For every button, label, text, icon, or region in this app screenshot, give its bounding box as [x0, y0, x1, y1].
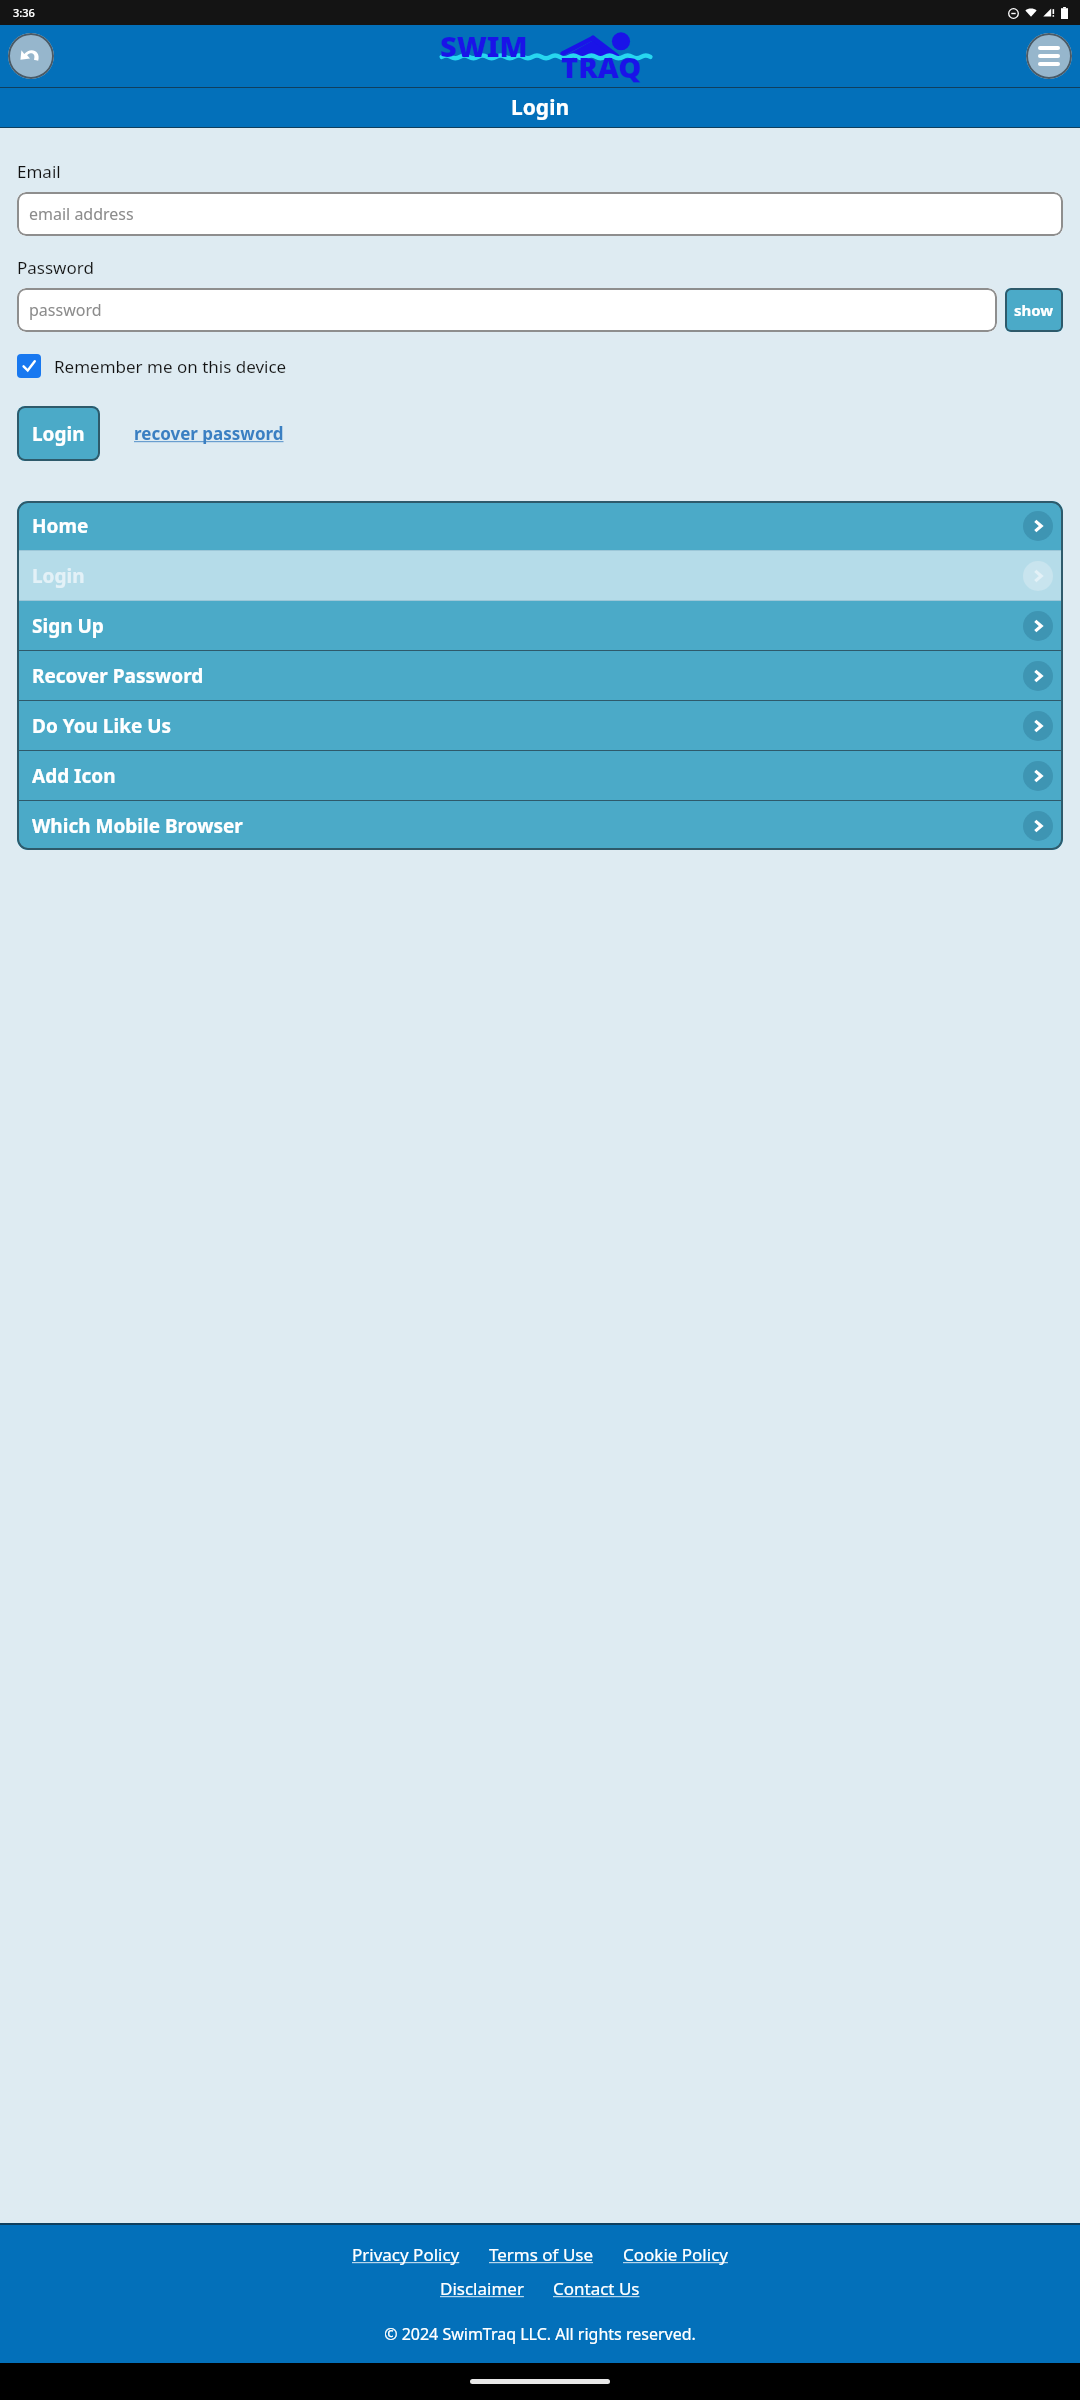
button[interactable]: Disclaimer: [440, 2277, 524, 2300]
staticText: Do You Like Us: [32, 713, 172, 739]
staticText: Login: [511, 93, 570, 122]
button[interactable]: Terms of Use: [489, 2243, 594, 2266]
staticText: Which Mobile Browser: [32, 813, 243, 839]
button[interactable]: Menu: [1026, 33, 1072, 79]
button[interactable]: Login: [17, 406, 100, 461]
button[interactable]: Cookie Policy: [623, 2243, 728, 2266]
button[interactable]: Which Mobile Browser: [17, 801, 1063, 850]
button[interactable]: show: [1005, 288, 1063, 332]
staticText: Recover Password: [32, 663, 204, 689]
button[interactable]: recover password: [130, 418, 288, 449]
staticText: Privacy Policy: [352, 2243, 460, 2266]
staticText: © 2024 SwimTraq LLC. All rights reserved…: [384, 2323, 696, 2345]
button[interactable]: Privacy Policy: [352, 2243, 460, 2266]
staticText: email address: [29, 203, 134, 225]
staticText: show: [1014, 300, 1054, 320]
staticText: password: [29, 299, 102, 321]
staticText: SWIM: [440, 26, 528, 65]
button[interactable]: Contact Us: [553, 2277, 640, 2300]
button[interactable]: password: [17, 288, 997, 332]
button[interactable]: Remember me on this device: [17, 354, 287, 378]
staticText: Home: [32, 513, 89, 539]
button[interactable]: Sign Up: [17, 601, 1063, 650]
button[interactable]: email address: [17, 192, 1063, 236]
staticText: Terms of Use: [489, 2243, 594, 2266]
button[interactable]: Back: [8, 33, 54, 79]
staticText: Login: [32, 563, 85, 589]
staticText: Cookie Policy: [623, 2243, 728, 2266]
staticText: recover password: [134, 422, 284, 445]
staticText: Sign Up: [32, 613, 104, 639]
staticText: TRAQ: [561, 47, 642, 86]
staticText: Email: [17, 160, 61, 183]
button[interactable]: Home: [17, 501, 1063, 550]
button[interactable]: Login: [17, 551, 1063, 600]
button[interactable]: Add Icon: [17, 751, 1063, 800]
staticText: Remember me on this device: [54, 355, 287, 378]
button[interactable]: Do You Like Us: [17, 701, 1063, 750]
staticText: Disclaimer: [440, 2277, 524, 2300]
staticText: Add Icon: [32, 763, 116, 789]
staticText: Contact Us: [553, 2277, 640, 2300]
staticText: Login: [32, 421, 85, 447]
button[interactable]: Recover Password: [17, 651, 1063, 700]
staticText: Password: [17, 256, 94, 279]
staticText: 3:36: [13, 5, 35, 20]
